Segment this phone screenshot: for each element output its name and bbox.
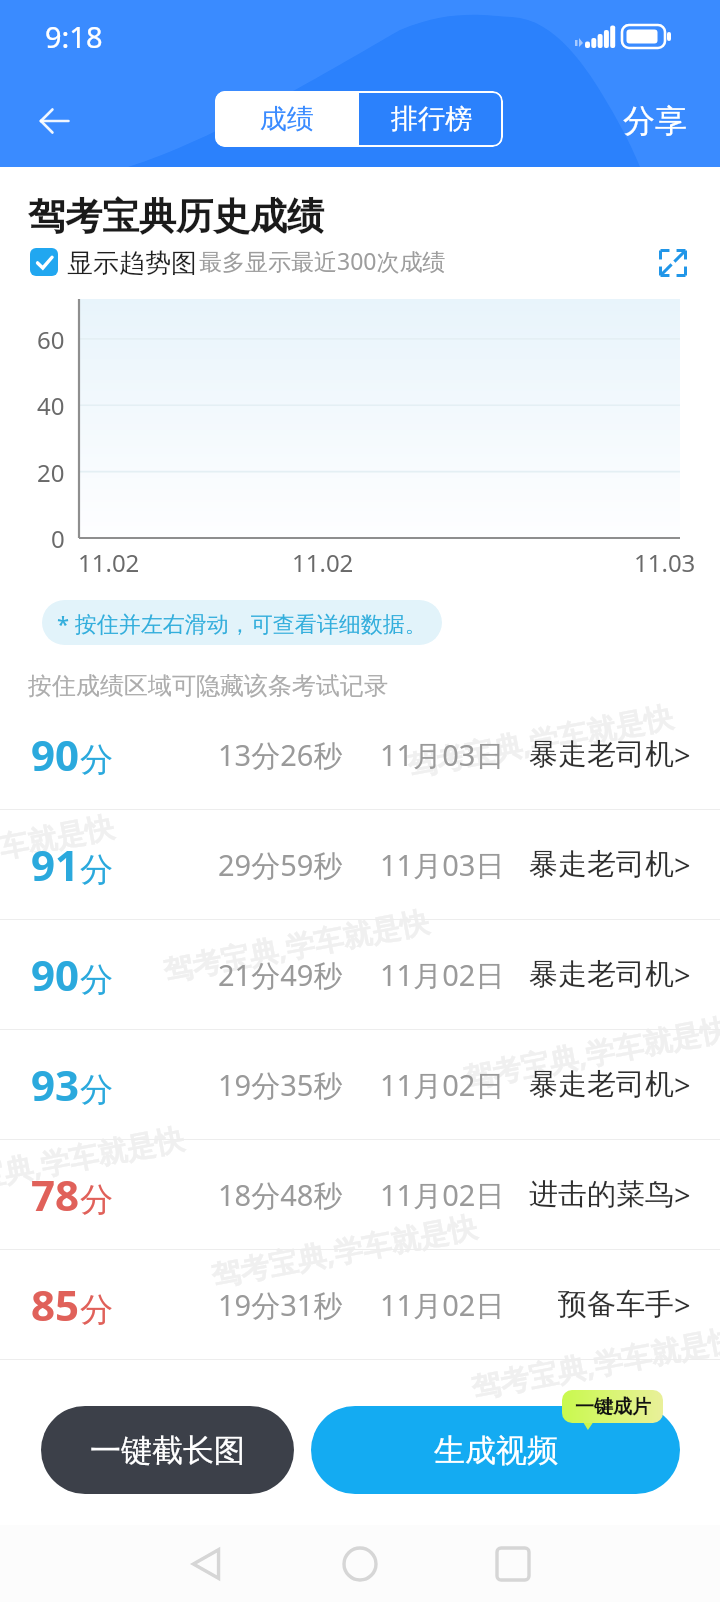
staticText: 进击的菜鸟 — [529, 1176, 674, 1213]
staticText: 20 — [37, 456, 65, 489]
staticText: 分 — [80, 849, 113, 891]
staticText: 驾考宝典,学车就是快 — [460, 1008, 720, 1097]
button[interactable]: 93 — [0, 1030, 720, 1139]
button[interactable]: 90 — [0, 920, 720, 1029]
button[interactable]: 一键截长图 — [41, 1406, 294, 1494]
staticText: > — [674, 1065, 691, 1104]
staticText: 9:18 — [45, 17, 103, 56]
staticText: 暴走老司机 — [529, 956, 674, 993]
staticText: 11.03 — [634, 546, 696, 579]
staticText: 90 — [31, 946, 80, 1003]
staticText: 驾考宝典,学车就是快 — [404, 696, 677, 785]
button[interactable]: 分享 — [611, 86, 699, 156]
staticText: 78 — [31, 1166, 80, 1223]
staticText: 93 — [31, 1056, 80, 1113]
staticText: 生成视频 — [434, 1431, 558, 1470]
staticText: 驾考宝典历史成绩 — [28, 193, 324, 240]
staticText: 60 — [37, 323, 65, 356]
staticText: 11月02日 — [380, 1285, 505, 1325]
staticText: 显示趋势图 — [67, 247, 197, 280]
staticText: > — [674, 1175, 691, 1214]
button[interactable]: 成绩 — [215, 91, 359, 147]
staticText: * 按住并左右滑动，可查看详细数据。 — [57, 608, 427, 638]
staticText: 最多显示最近300次成绩 — [199, 245, 446, 276]
staticText: 11月02日 — [380, 1065, 505, 1105]
staticText: 11.02 — [292, 546, 354, 579]
button[interactable]: 显示趋势图 — [30, 248, 58, 276]
staticText: 11月02日 — [380, 955, 505, 995]
staticText: 成绩 — [260, 102, 314, 136]
button[interactable]: 90 — [0, 700, 720, 809]
staticText: 19分31秒 — [218, 1285, 343, 1325]
staticText: 18分48秒 — [218, 1175, 343, 1215]
staticText: 驾考宝典,学车就是快 — [468, 1318, 720, 1407]
staticText: 排行榜 — [391, 102, 472, 136]
staticText: > — [674, 845, 691, 884]
staticText: 分 — [80, 1179, 113, 1221]
staticText: 分享 — [623, 101, 687, 141]
staticText: 11月03日 — [380, 845, 505, 885]
staticText: 19分35秒 — [218, 1065, 343, 1105]
button[interactable]: 85 — [0, 1250, 720, 1359]
staticText: 驾考宝典,学车就是快 — [208, 1206, 481, 1295]
staticText: > — [674, 955, 691, 994]
staticText: 分 — [80, 959, 113, 1001]
staticText: 90 — [31, 726, 80, 783]
staticText: 40 — [37, 389, 65, 422]
staticText: 按住成绩区域可隐藏该条考试记录 — [28, 671, 388, 701]
staticText: 分 — [80, 1289, 113, 1331]
staticText: 13分26秒 — [218, 735, 343, 775]
staticText: > — [674, 735, 691, 774]
staticText: 一键截长图 — [90, 1431, 245, 1470]
staticText: > — [674, 1285, 691, 1324]
staticText: 一键成片 — [575, 1395, 651, 1419]
button[interactable]: 最近任务 — [477, 1528, 549, 1600]
staticText: 29分59秒 — [218, 845, 343, 885]
staticText: 分 — [80, 739, 113, 781]
staticText: 85 — [31, 1276, 80, 1333]
button[interactable]: 排行榜 — [359, 91, 503, 147]
button[interactable]: 全屏显示 — [650, 240, 695, 285]
button[interactable]: 主页 — [324, 1528, 396, 1600]
staticText: 11月03日 — [380, 735, 505, 775]
staticText: 暴走老司机 — [529, 1066, 674, 1103]
button[interactable]: 生成视频 — [311, 1406, 680, 1494]
button[interactable]: 返回 — [171, 1528, 243, 1600]
staticText: 91 — [31, 836, 80, 893]
staticText: 暴走老司机 — [529, 736, 674, 773]
staticText: 驾考宝典,学车就是快 — [0, 806, 118, 895]
staticText: 11月02日 — [380, 1175, 505, 1215]
button[interactable]: 78 — [0, 1140, 720, 1249]
staticText: 11.02 — [78, 546, 140, 579]
button[interactable]: 返回 — [22, 88, 88, 154]
staticText: 驾考宝典,学车就是快 — [160, 901, 433, 990]
staticText: 分 — [80, 1069, 113, 1111]
staticText: 驾考宝典,学车就是快 — [0, 1118, 188, 1207]
staticText: 预备车手 — [558, 1286, 674, 1323]
staticText: 0 — [51, 522, 65, 555]
button[interactable]: 91 — [0, 810, 720, 919]
staticText: 暴走老司机 — [529, 846, 674, 883]
staticText: 21分49秒 — [218, 955, 343, 995]
